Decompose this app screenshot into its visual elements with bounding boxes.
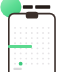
button[interactable]: Continue [8, 45, 32, 48]
